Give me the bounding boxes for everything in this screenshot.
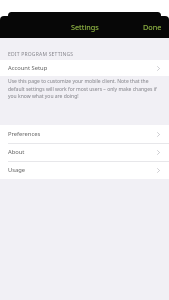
staticText: Done	[143, 22, 162, 32]
staticText: Preferences	[8, 130, 41, 138]
staticText: About	[8, 148, 25, 156]
button[interactable]: About	[0, 143, 169, 161]
staticText: Use this page to customize your mobile c…	[8, 78, 161, 99]
button[interactable]: Preferences	[0, 125, 169, 143]
staticText: EDIT PROGRAM SETTINGS	[8, 51, 74, 58]
button[interactable]: Account Setup	[0, 60, 169, 76]
staticText: Usage	[8, 166, 26, 174]
staticText: Account Setup	[8, 64, 48, 72]
staticText: Settings	[71, 22, 99, 32]
button[interactable]: Done	[135, 19, 169, 35]
button[interactable]: Usage	[0, 161, 169, 179]
